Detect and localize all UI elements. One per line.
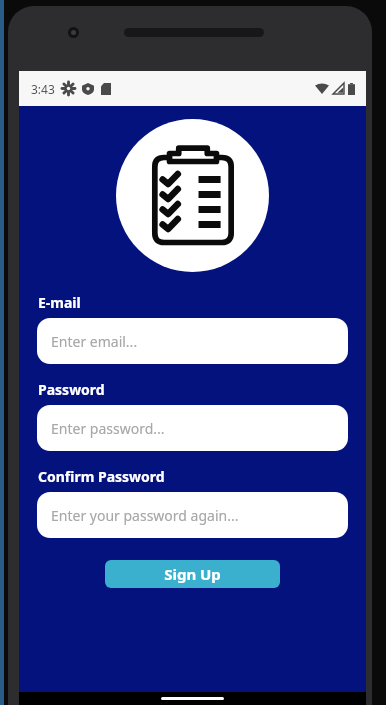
button[interactable]: Enter password... (37, 405, 348, 451)
staticText: 3:43 (31, 81, 55, 97)
staticText: Password (38, 380, 105, 399)
button[interactable]: Enter your password again... (37, 492, 348, 538)
other: Home gesture (161, 697, 224, 700)
staticText: Enter email... (51, 332, 138, 351)
staticText: E-mail (38, 293, 81, 312)
button[interactable]: Enter email... (37, 318, 348, 364)
staticText: Enter your password again... (51, 506, 239, 525)
button[interactable]: Sign Up (105, 560, 280, 588)
staticText: Sign Up (164, 564, 221, 584)
staticText: Confirm Password (38, 467, 165, 486)
staticText: Enter password... (51, 419, 165, 438)
